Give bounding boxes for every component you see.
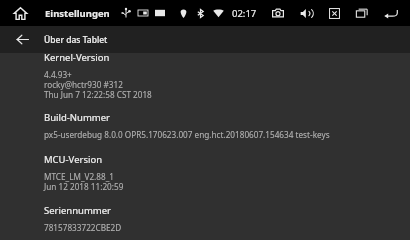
button[interactable]: Back: [379, 1, 403, 25]
button[interactable]: Build-Nummer: [0, 107, 410, 145]
staticText: rocky@hctr930 #312: [44, 79, 123, 90]
staticText: Seriennummer: [44, 204, 111, 217]
button[interactable]: Volume: [295, 2, 317, 24]
button[interactable]: MCU-Version: [0, 149, 410, 197]
staticText: MTCE_LM_V2.88_1: [44, 171, 115, 182]
button[interactable]: Screenshot: [267, 2, 289, 24]
staticText: 78157833722CBE2D: [44, 222, 122, 233]
staticText: Jun 12 2018 11:20:59: [44, 181, 124, 192]
button[interactable]: Close: [323, 2, 345, 24]
staticText: 4.4.93+: [44, 69, 72, 80]
button[interactable]: Recent apps: [351, 2, 373, 24]
button[interactable]: Kernel-Version: [0, 47, 410, 105]
staticText: Kernel-Version: [44, 51, 110, 64]
button[interactable]: Navigate up: [0, 26, 44, 53]
staticText: Einstellungen: [45, 7, 110, 20]
staticText: Build-Nummer: [44, 111, 110, 124]
button[interactable]: Home: [8, 1, 32, 25]
button[interactable]: Seriennummer: [0, 200, 410, 238]
staticText: Thu Jun 7 12:22:58 CST 2018: [44, 89, 152, 100]
staticText: MCU-Version: [44, 153, 103, 166]
staticText: 02:17: [232, 7, 257, 20]
staticText: px5-userdebug 8.0.0 OPR5.170623.007 eng.…: [44, 129, 330, 140]
staticText: Über das Tablet: [44, 34, 108, 46]
